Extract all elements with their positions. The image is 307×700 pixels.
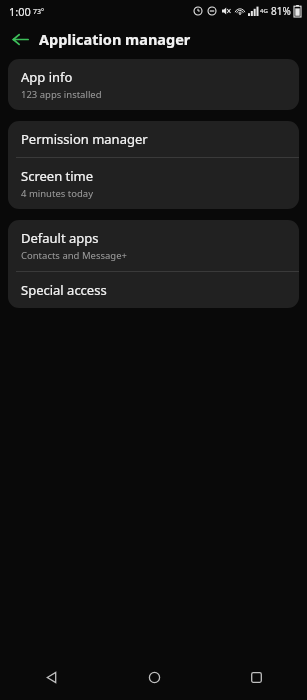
button[interactable]: Default apps <box>8 220 299 271</box>
button[interactable]: Back <box>6 25 34 53</box>
staticText: Application manager <box>39 29 191 49</box>
button[interactable]: Recent apps <box>205 654 307 700</box>
button[interactable]: App info <box>8 59 299 110</box>
staticText: 1:00 <box>9 4 31 19</box>
staticText: Screen time <box>21 167 94 185</box>
staticText: App info <box>21 68 73 86</box>
staticText: Special access <box>21 281 107 299</box>
button[interactable]: Permission manager <box>8 121 299 157</box>
staticText: 73° <box>33 7 45 17</box>
staticText: 4G <box>260 7 268 15</box>
button[interactable]: Screen time <box>8 158 299 209</box>
button[interactable]: Back <box>0 654 103 700</box>
staticText: Permission manager <box>21 130 148 148</box>
button[interactable]: Special access <box>8 272 299 308</box>
staticText: Default apps <box>21 229 99 247</box>
staticText: Contacts and Message+ <box>21 249 127 262</box>
button[interactable]: Home <box>103 654 205 700</box>
staticText: 123 apps installed <box>21 88 102 101</box>
staticText: 4 minutes today <box>21 187 93 200</box>
staticText: 81% <box>271 4 291 18</box>
